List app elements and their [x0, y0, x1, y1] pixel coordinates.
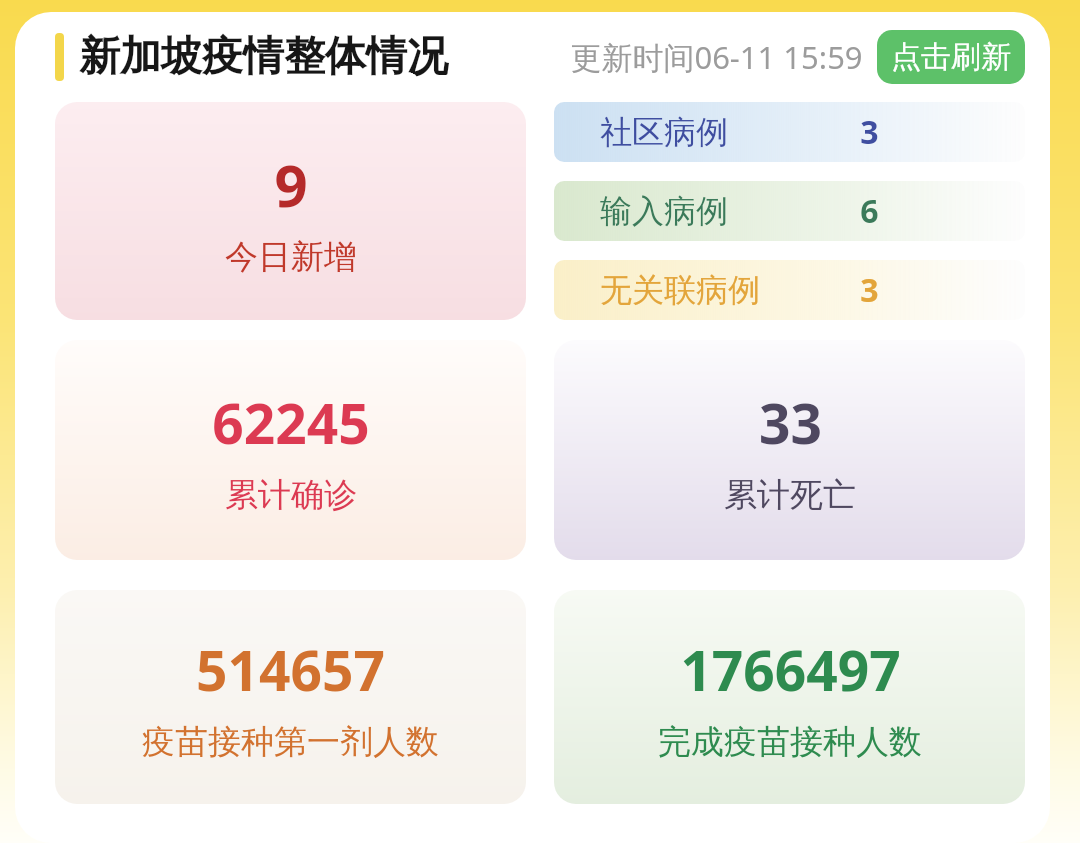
staticText: 完成疫苗接种人数	[658, 721, 922, 763]
button[interactable]: 输入病例	[554, 181, 1025, 241]
staticText: 33	[759, 385, 822, 460]
staticText: 9	[274, 145, 308, 224]
staticText: 3	[860, 268, 879, 312]
staticText: 输入病例	[600, 191, 728, 231]
button[interactable]: 社区病例	[554, 102, 1025, 162]
staticText: 累计死亡	[724, 474, 856, 516]
button[interactable]: 1766497	[554, 590, 1025, 804]
staticText: 社区病例	[600, 112, 728, 152]
staticText: 今日新增	[225, 236, 357, 278]
button[interactable]: 33	[554, 340, 1025, 560]
staticText: 新加坡疫情整体情况	[79, 31, 448, 83]
button[interactable]: 无关联病例	[554, 260, 1025, 320]
staticText: 点击刷新	[891, 38, 1011, 76]
staticText: 疫苗接种第一剂人数	[142, 721, 439, 763]
staticText: 6	[860, 189, 879, 233]
button[interactable]: 9	[55, 102, 526, 320]
staticText: 无关联病例	[600, 270, 760, 310]
staticText: 3	[860, 110, 879, 154]
button[interactable]: 点击刷新	[877, 30, 1025, 84]
staticText: 514657	[196, 632, 385, 707]
staticText: 1766497	[680, 632, 901, 707]
button[interactable]: 514657	[55, 590, 526, 804]
staticText: 累计确诊	[225, 474, 357, 516]
button[interactable]: 62245	[55, 340, 526, 560]
staticText: 更新时间06-11 15:59	[570, 36, 863, 78]
staticText: 62245	[212, 385, 370, 460]
